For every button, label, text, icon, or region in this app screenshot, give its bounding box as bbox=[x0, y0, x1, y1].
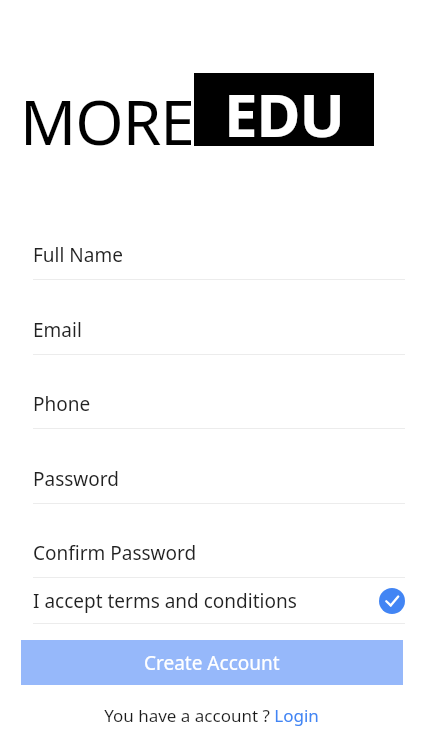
staticText: Phone bbox=[33, 391, 91, 417]
staticText: EDU bbox=[224, 73, 344, 146]
button[interactable]: Phone bbox=[33, 391, 405, 429]
staticText: Confirm Password bbox=[33, 540, 197, 566]
staticText: Create Account bbox=[144, 650, 280, 676]
staticText: I accept terms and conditions bbox=[33, 588, 379, 614]
button[interactable]: Create Account bbox=[21, 640, 403, 685]
staticText: Full Name bbox=[33, 242, 123, 268]
button[interactable]: Confirm Password bbox=[33, 540, 405, 578]
button[interactable]: Email bbox=[33, 317, 405, 355]
button[interactable]: Password bbox=[33, 466, 405, 504]
staticText: Email bbox=[33, 317, 82, 343]
button[interactable]: You have a account ? Login bbox=[104, 704, 319, 727]
button[interactable]: Accept terms and conditions bbox=[379, 588, 405, 614]
staticText: MORE bbox=[20, 79, 194, 152]
staticText: Password bbox=[33, 466, 119, 492]
button[interactable]: Full Name bbox=[33, 242, 405, 280]
button[interactable]: I accept terms and conditions bbox=[33, 578, 405, 623]
